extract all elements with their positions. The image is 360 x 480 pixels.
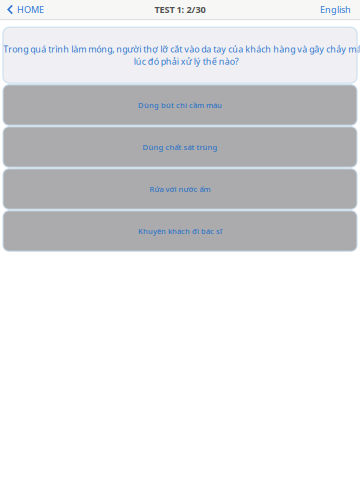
button[interactable]: Dùng chất sát trùng bbox=[3, 127, 357, 167]
button[interactable]: English bbox=[311, 0, 360, 19]
staticText: HOME bbox=[17, 3, 44, 16]
button[interactable]: Khuyên khách đi bác sĩ bbox=[3, 211, 357, 251]
button[interactable]: Rửa với nước ấm bbox=[3, 169, 357, 209]
button[interactable]: Dùng bút chì cầm máu bbox=[3, 85, 357, 125]
staticText: TEST 1: 2/30 bbox=[154, 3, 205, 16]
staticText: English bbox=[320, 3, 351, 16]
staticText: Trong quá trình làm móng, người thợ lỡ c… bbox=[3, 43, 360, 67]
staticText: Rửa với nước ấm bbox=[149, 184, 210, 194]
staticText: Dùng bút chì cầm máu bbox=[138, 100, 222, 110]
staticText: Dùng chất sát trùng bbox=[142, 142, 217, 152]
button[interactable]: HOME bbox=[0, 0, 52, 19]
staticText: Khuyên khách đi bác sĩ bbox=[138, 226, 222, 236]
